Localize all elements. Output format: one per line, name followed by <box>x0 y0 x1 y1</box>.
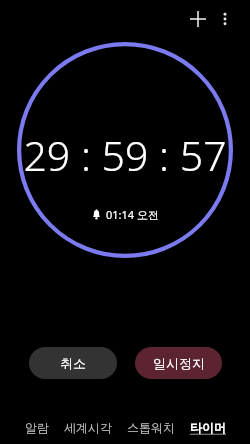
staticText: 29 : 59 : 57 <box>23 127 227 183</box>
button[interactable]: 알람 <box>23 411 51 444</box>
staticText: 알람 <box>25 420 49 435</box>
staticText: 스톱워치 <box>127 420 175 435</box>
button[interactable]: 취소 <box>29 347 117 379</box>
staticText: 일시정지 <box>153 355 205 371</box>
button[interactable]: 세계시각 <box>62 411 114 444</box>
button[interactable]: 29 : 59 : 57 <box>0 127 250 183</box>
staticText: 01:14 오전 <box>106 207 159 222</box>
staticText: 세계시각 <box>64 420 112 435</box>
button[interactable]: 스톱워치 <box>125 411 177 444</box>
button[interactable]: 일시정지 <box>135 347 222 379</box>
button[interactable]: 타이머 <box>188 411 228 444</box>
staticText: 취소 <box>60 355 86 371</box>
button[interactable]: Add timer <box>186 7 210 31</box>
staticText: 타이머 <box>190 420 226 435</box>
button[interactable]: More options <box>213 7 237 31</box>
